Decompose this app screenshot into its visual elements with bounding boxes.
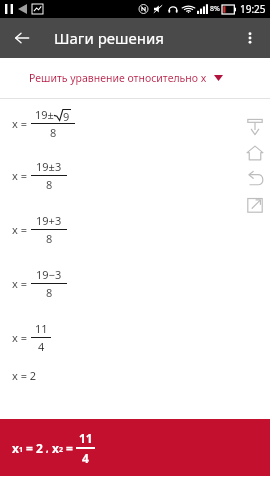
staticText: 4 <box>82 450 89 466</box>
button[interactable]: x <box>0 419 270 476</box>
staticText: 8 <box>46 177 53 192</box>
staticText: x = 2 <box>12 368 37 383</box>
staticText: 19−3 <box>36 267 62 282</box>
button[interactable]: Решить уравнение относительно x <box>0 58 270 98</box>
staticText: Решить уравнение относительно x <box>29 71 207 85</box>
staticText: 9 <box>63 109 70 124</box>
staticText: 2 <box>59 445 64 455</box>
button[interactable]: Back <box>6 22 38 54</box>
staticText: x = <box>12 116 27 131</box>
staticText: 11 <box>79 430 93 446</box>
staticText: x = <box>12 168 27 183</box>
staticText: x <box>12 440 19 456</box>
staticText: 8% <box>210 4 220 14</box>
staticText: x = <box>12 222 27 237</box>
staticText: 19:25 <box>240 2 266 16</box>
button[interactable]: Home <box>244 142 266 164</box>
staticText: 11 <box>35 321 48 336</box>
staticText: 4 <box>38 339 45 354</box>
button[interactable]: Share <box>244 194 266 216</box>
staticText: 19+3 <box>36 213 62 228</box>
staticText: 8 <box>46 231 53 246</box>
button[interactable]: Undo <box>244 168 266 190</box>
staticText: 1 <box>19 445 24 455</box>
staticText: x <box>52 440 59 456</box>
staticText: 19±3 <box>36 159 62 174</box>
staticText: = <box>66 440 73 456</box>
staticText: 8 <box>46 285 53 300</box>
button[interactable]: More options <box>234 22 266 54</box>
staticText: x = <box>12 276 27 291</box>
staticText: = 2 <box>26 440 43 456</box>
staticText: Шаги решения <box>54 28 164 48</box>
staticText: x = <box>12 330 27 345</box>
staticText: 19± <box>35 107 54 122</box>
staticText: 8 <box>50 125 57 140</box>
button[interactable]: Download <box>244 116 266 138</box>
staticText: , <box>46 442 49 454</box>
